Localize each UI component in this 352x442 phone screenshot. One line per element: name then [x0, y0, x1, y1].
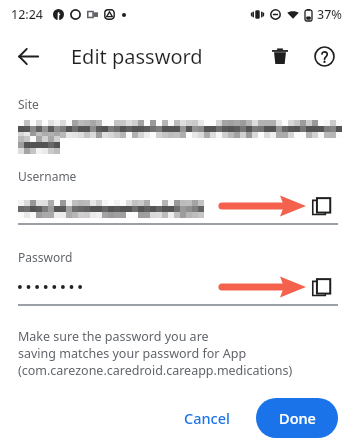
- button[interactable]: Delete: [258, 34, 302, 78]
- staticText: Password: [18, 249, 73, 265]
- button[interactable]: Help: [302, 34, 346, 78]
- button[interactable]: Back: [6, 34, 50, 78]
- staticText: Make sure the password you are saving ma…: [18, 328, 293, 379]
- button[interactable]: Done: [256, 398, 338, 438]
- staticText: Edit password: [71, 43, 203, 70]
- staticText: 12:24: [11, 6, 44, 23]
- staticText: Username: [18, 168, 77, 184]
- staticText: 37%: [317, 6, 342, 23]
- staticText: Done: [279, 408, 316, 428]
- staticText: Cancel: [184, 408, 230, 428]
- staticText: Site: [18, 96, 39, 112]
- button[interactable]: Copy Username: [304, 193, 338, 219]
- button[interactable]: Copy Password: [304, 274, 338, 300]
- button[interactable]: Cancel: [170, 398, 244, 438]
